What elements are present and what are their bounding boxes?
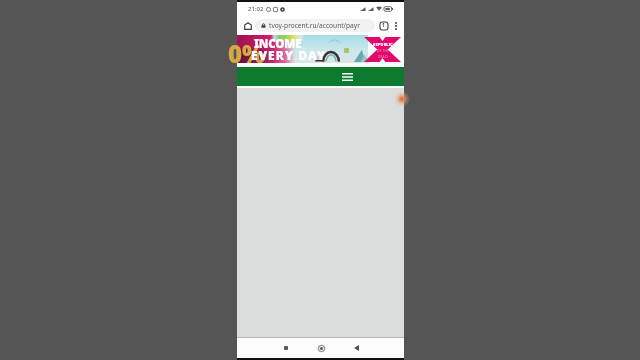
staticText: 21:02 bbox=[248, 5, 264, 13]
staticText: DEALS bbox=[378, 55, 389, 59]
staticText: 1 bbox=[382, 22, 385, 29]
staticText: INCOME bbox=[254, 36, 302, 52]
staticText: OF THE bbox=[377, 49, 390, 53]
staticText: EVERY DAY bbox=[251, 47, 327, 63]
button[interactable]: tvoy-procent.ru/account/payr bbox=[255, 19, 375, 32]
staticText: 0% bbox=[228, 37, 265, 65]
button[interactable]: Recent apps bbox=[277, 339, 295, 357]
button[interactable]: Home bbox=[241, 19, 254, 32]
button[interactable]: Tabs bbox=[377, 19, 390, 32]
button[interactable]: 0% bbox=[237, 35, 404, 63]
button[interactable]: Back bbox=[347, 339, 365, 357]
staticText: REPUBLIC bbox=[373, 42, 394, 47]
button[interactable]: Home bbox=[312, 339, 330, 357]
staticText: tvoy-procent.ru/account/payr bbox=[269, 21, 360, 30]
button[interactable]: More options bbox=[390, 20, 401, 31]
button[interactable]: Chat bbox=[394, 91, 410, 107]
button[interactable]: Menu bbox=[340, 69, 355, 84]
